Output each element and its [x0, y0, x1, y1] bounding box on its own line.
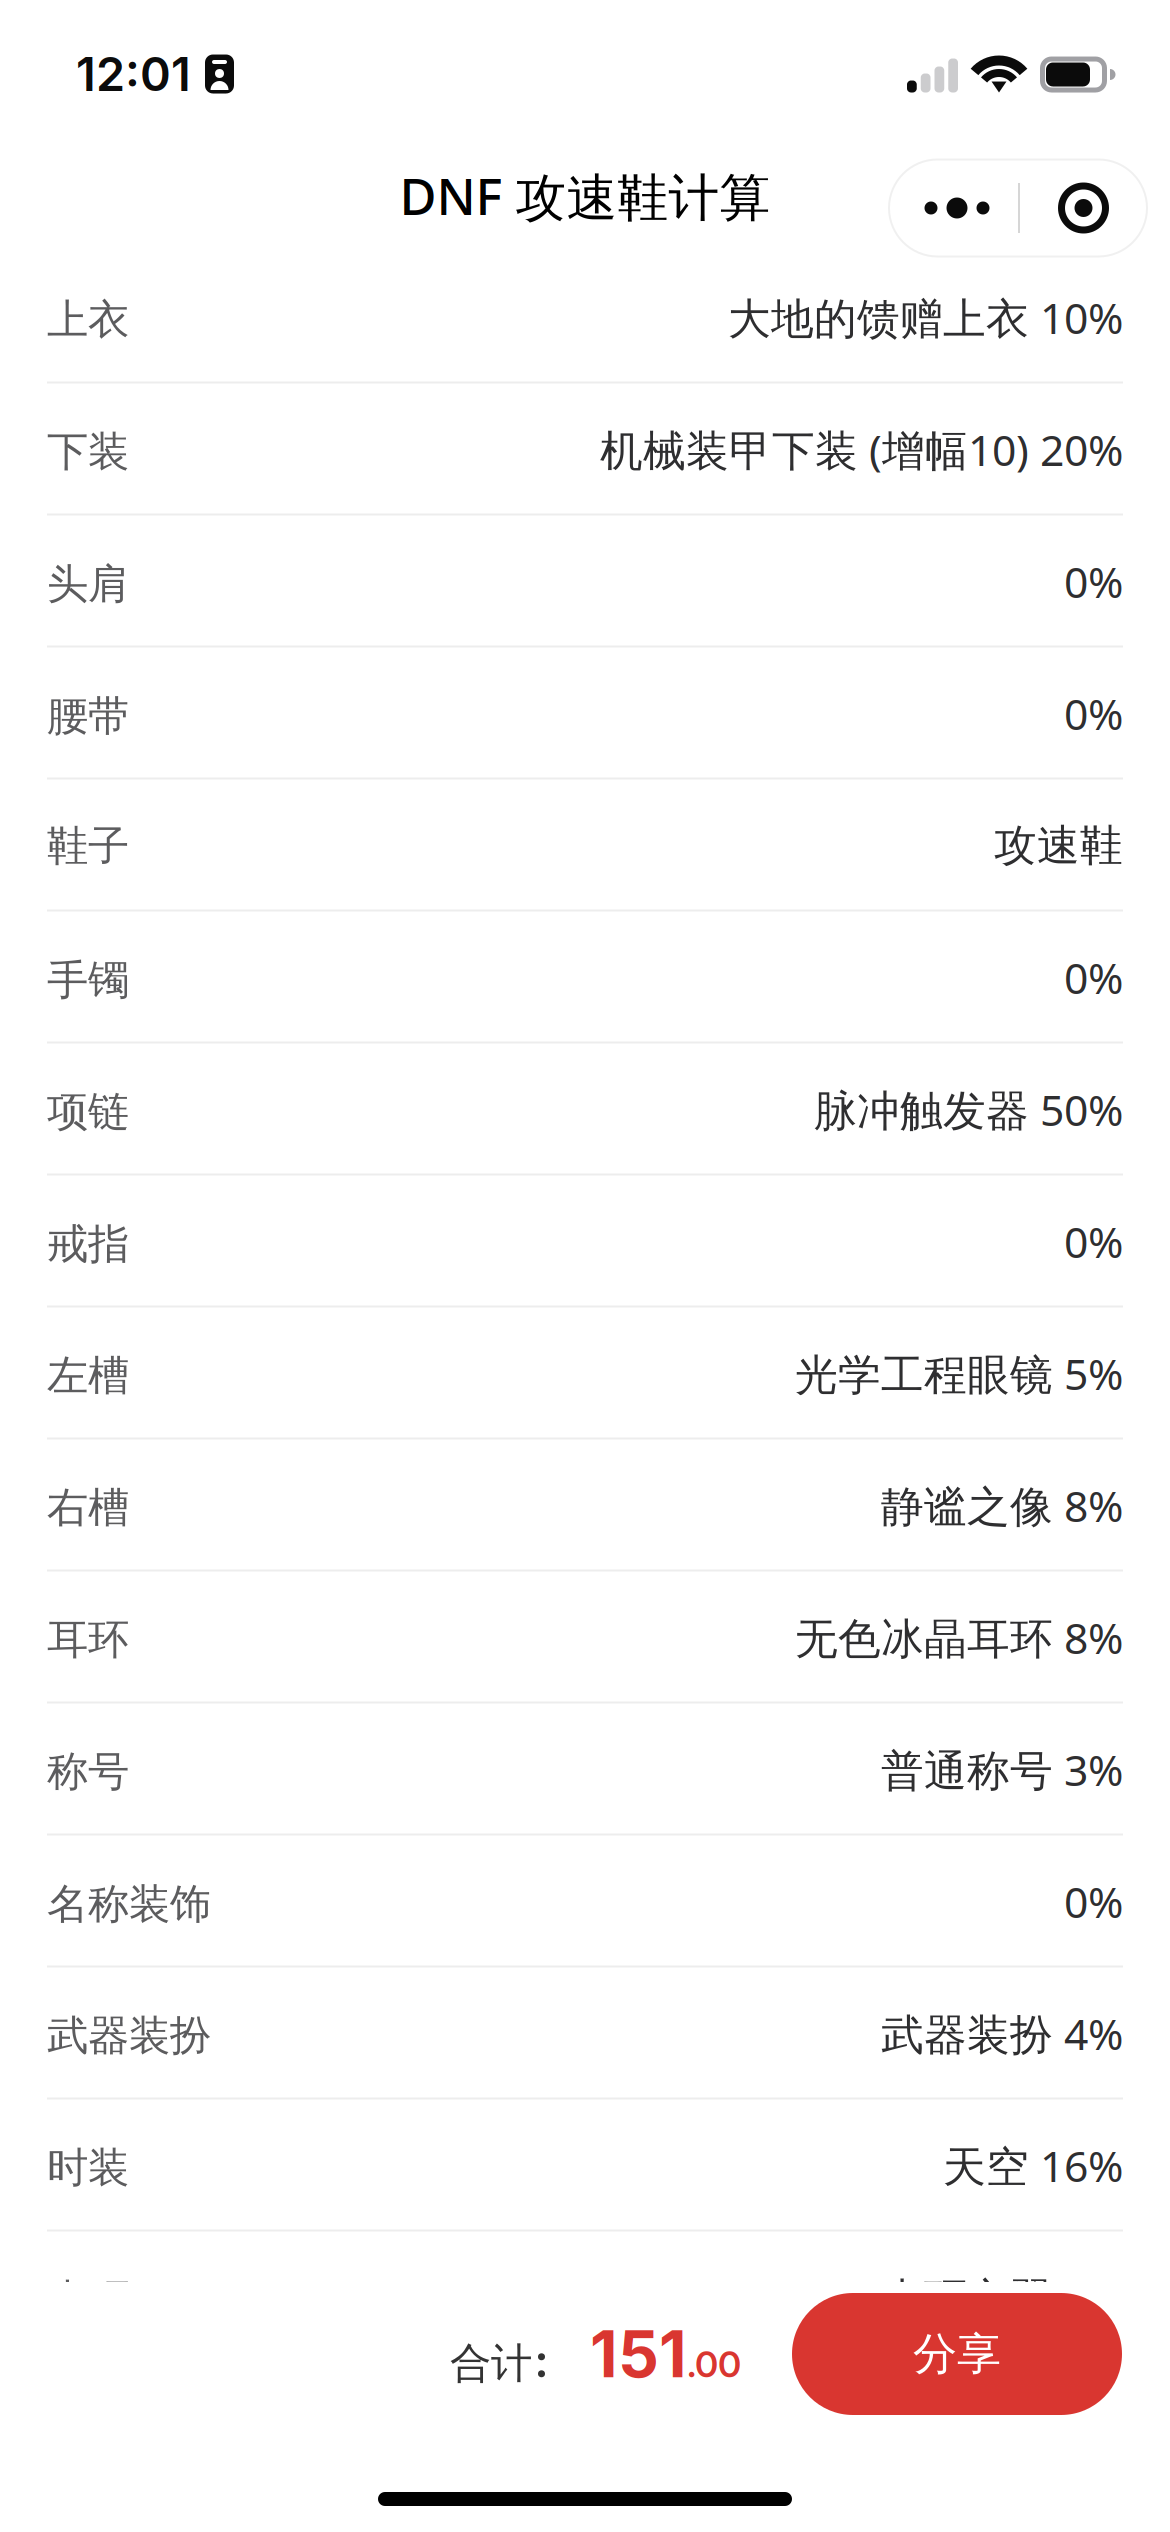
- staticText: 大地的馈赠上衣 10%: [728, 288, 1123, 346]
- button[interactable]: 右槽: [0, 1439, 1170, 1571]
- button[interactable]: 手镯: [0, 911, 1170, 1043]
- button[interactable]: 称号: [0, 1703, 1170, 1835]
- staticText: 12:01: [76, 46, 191, 102]
- staticText: 无色冰晶耳环 8%: [795, 1608, 1123, 1666]
- button[interactable]: 耳环: [0, 1571, 1170, 1703]
- staticText: 时装: [47, 2142, 129, 2194]
- staticText: 腰带: [47, 690, 129, 742]
- staticText: 普通称号 3%: [881, 1740, 1123, 1798]
- staticText: .00: [687, 2342, 741, 2386]
- staticText: 攻速鞋: [994, 819, 1123, 872]
- staticText: 0%: [1064, 1872, 1123, 1930]
- staticText: 戒指: [47, 1218, 129, 1270]
- button[interactable]: 戒指: [0, 1175, 1170, 1307]
- staticText: 天空 16%: [943, 2136, 1123, 2194]
- staticText: 0%: [1064, 948, 1123, 1006]
- staticText: 鞋子: [47, 820, 129, 872]
- staticText: 0%: [1064, 684, 1123, 742]
- staticText: 上衣: [47, 294, 129, 346]
- staticText: 下装: [47, 426, 129, 478]
- button[interactable]: 更多: [889, 159, 1018, 256]
- staticText: 手镯: [47, 954, 129, 1006]
- button[interactable]: 头肩: [0, 515, 1170, 647]
- button[interactable]: 下装: [0, 383, 1170, 515]
- staticText: 光环: [47, 2274, 129, 2326]
- staticText: 右槽: [47, 1482, 129, 1534]
- staticText: 合计: [450, 2337, 532, 2390]
- staticText: 机械装甲下装 (增幅10) 20%: [600, 420, 1123, 478]
- button[interactable]: 时装: [0, 2099, 1170, 2231]
- button[interactable]: 名称装饰: [0, 1835, 1170, 1967]
- button[interactable]: 左槽: [0, 1307, 1170, 1439]
- button[interactable]: 分享: [792, 2293, 1122, 2415]
- staticText: 光环之翼 4%: [881, 2268, 1123, 2326]
- button[interactable]: 光环: [0, 2231, 1170, 2363]
- staticText: 151: [590, 2315, 687, 2393]
- button[interactable]: 腰带: [0, 647, 1170, 779]
- staticText: 0%: [1064, 552, 1123, 610]
- button[interactable]: 武器装扮: [0, 1967, 1170, 2099]
- staticText: 武器装扮 4%: [881, 2004, 1123, 2062]
- staticText: 脉冲触发器 50%: [814, 1080, 1123, 1138]
- staticText: 静谧之像 8%: [881, 1476, 1123, 1534]
- staticText: 左槽: [47, 1350, 129, 1402]
- staticText: 头肩: [47, 558, 129, 610]
- staticText: 称号: [47, 1746, 129, 1798]
- staticText: 项链: [47, 1086, 129, 1138]
- staticText: 耳环: [47, 1614, 129, 1666]
- button[interactable]: 鞋子: [0, 779, 1170, 911]
- staticText: 名称装饰: [47, 1878, 211, 1930]
- staticText: 武器装扮: [47, 2010, 211, 2062]
- staticText: 分享: [913, 2326, 1001, 2382]
- staticText: 光学工程眼镜 5%: [795, 1344, 1123, 1402]
- staticText: DNF 攻速鞋计算: [399, 161, 770, 230]
- button[interactable]: 上衣: [0, 251, 1170, 383]
- staticText: 0%: [1064, 1212, 1123, 1270]
- button[interactable]: 项链: [0, 1043, 1170, 1175]
- button[interactable]: 关闭小程序: [1020, 159, 1147, 256]
